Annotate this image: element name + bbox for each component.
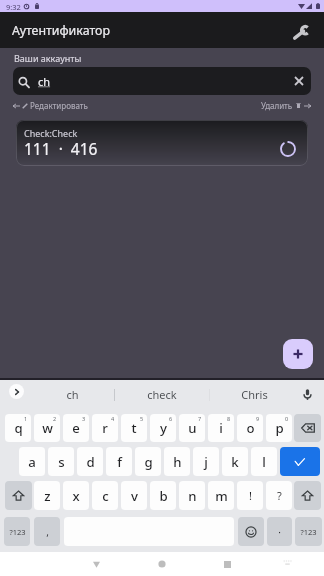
staticText: d: [86, 453, 95, 471]
button[interactable]: t: [121, 414, 147, 442]
button[interactable]: g: [135, 447, 161, 476]
staticText: Check:Check: [24, 127, 78, 139]
button[interactable]: check: [119, 380, 205, 408]
staticText: 7: [198, 415, 202, 422]
staticText: 2: [53, 415, 57, 422]
staticText: ?123: [300, 527, 317, 537]
button[interactable]: Voice input: [297, 384, 317, 404]
button[interactable]: c: [92, 481, 118, 510]
staticText: ch: [38, 74, 51, 89]
staticText: 3: [82, 415, 86, 422]
button[interactable]: j: [193, 447, 219, 476]
button[interactable]: f: [106, 447, 132, 476]
staticText: e: [72, 419, 80, 437]
staticText: Удалить: [261, 100, 293, 111]
button[interactable]: Back: [86, 554, 106, 574]
button[interactable]: Recents: [217, 554, 237, 574]
staticText: Аутентификатор: [12, 22, 110, 39]
staticText: 1: [24, 415, 28, 422]
staticText: ?: [277, 488, 282, 503]
staticText: 8: [227, 415, 231, 422]
button[interactable]: s: [48, 447, 74, 476]
button[interactable]: d: [77, 447, 103, 476]
staticText: check: [147, 387, 177, 402]
button[interactable]: x: [63, 481, 89, 510]
staticText: s: [58, 453, 65, 471]
staticText: 4: [111, 415, 115, 422]
button[interactable]: ch: [13, 67, 311, 95]
staticText: 111 · 416: [24, 138, 98, 159]
button[interactable]: z: [34, 481, 60, 510]
staticText: 9:32: [6, 2, 21, 12]
button[interactable]: e: [63, 414, 89, 442]
staticText: 5: [140, 415, 144, 422]
staticText: g: [144, 453, 153, 471]
button[interactable]: a: [19, 447, 45, 476]
button[interactable]: y: [150, 414, 176, 442]
button[interactable]: v: [121, 481, 147, 510]
button[interactable]: u: [179, 414, 205, 442]
button[interactable]: More suggestions: [9, 384, 24, 399]
button[interactable]: Add account: [283, 339, 313, 369]
staticText: y: [160, 419, 167, 437]
staticText: ch: [66, 387, 79, 402]
button[interactable]: m: [208, 481, 234, 510]
button[interactable]: ?: [266, 481, 292, 510]
staticText: Редактировать: [30, 100, 88, 111]
staticText: t: [131, 419, 137, 437]
button[interactable]: Hide keyboard: [278, 553, 296, 571]
staticText: f: [117, 453, 122, 471]
button[interactable]: q: [5, 414, 31, 442]
button[interactable]: enter: [280, 447, 320, 476]
button[interactable]: backspace: [294, 414, 321, 442]
button[interactable]: b: [150, 481, 176, 510]
staticText: q: [14, 419, 23, 437]
button[interactable]: Редактировать: [13, 100, 88, 111]
staticText: x: [72, 487, 80, 505]
button[interactable]: l: [251, 447, 277, 476]
staticText: 6: [169, 415, 173, 422]
staticText: m: [215, 487, 228, 505]
button[interactable]: w: [34, 414, 60, 442]
button[interactable]: ?123: [4, 517, 30, 546]
button[interactable]: n: [179, 481, 205, 510]
staticText: z: [44, 487, 51, 505]
button[interactable]: k: [222, 447, 248, 476]
button[interactable]: ,: [34, 517, 60, 546]
button[interactable]: shift: [5, 481, 32, 510]
staticText: p: [275, 419, 284, 437]
button[interactable]: Clear: [289, 71, 309, 91]
staticText: ,: [46, 525, 49, 539]
staticText: v: [131, 487, 138, 505]
button[interactable]: i: [208, 414, 234, 442]
staticText: b: [159, 487, 168, 505]
button[interactable]: Home: [152, 554, 172, 574]
staticText: !: [249, 488, 252, 503]
button[interactable]: Settings: [289, 20, 314, 45]
staticText: r: [102, 419, 108, 437]
staticText: ·: [278, 525, 281, 539]
button[interactable]: !: [237, 481, 263, 510]
staticText: i: [219, 419, 223, 437]
button[interactable]: Chris: [214, 380, 294, 408]
button[interactable]: shift: [294, 481, 321, 510]
button[interactable]: ·: [267, 517, 292, 546]
staticText: h: [173, 453, 182, 471]
button[interactable]: h: [164, 447, 190, 476]
staticText: ?123: [9, 527, 26, 537]
button[interactable]: o: [237, 414, 263, 442]
button[interactable]: Удалить: [261, 100, 311, 111]
button[interactable]: Check:Check: [16, 120, 308, 166]
staticText: 0: [285, 415, 289, 422]
button[interactable]: p: [266, 414, 292, 442]
staticText: w: [42, 419, 53, 437]
button[interactable]: r: [92, 414, 118, 442]
staticText: l: [262, 453, 266, 471]
button[interactable]: ch: [30, 380, 114, 408]
button[interactable]: emoji: [238, 517, 264, 546]
staticText: n: [188, 487, 197, 505]
staticText: o: [246, 419, 255, 437]
button[interactable]: ?123: [295, 517, 322, 546]
staticText: Chris: [241, 387, 268, 402]
